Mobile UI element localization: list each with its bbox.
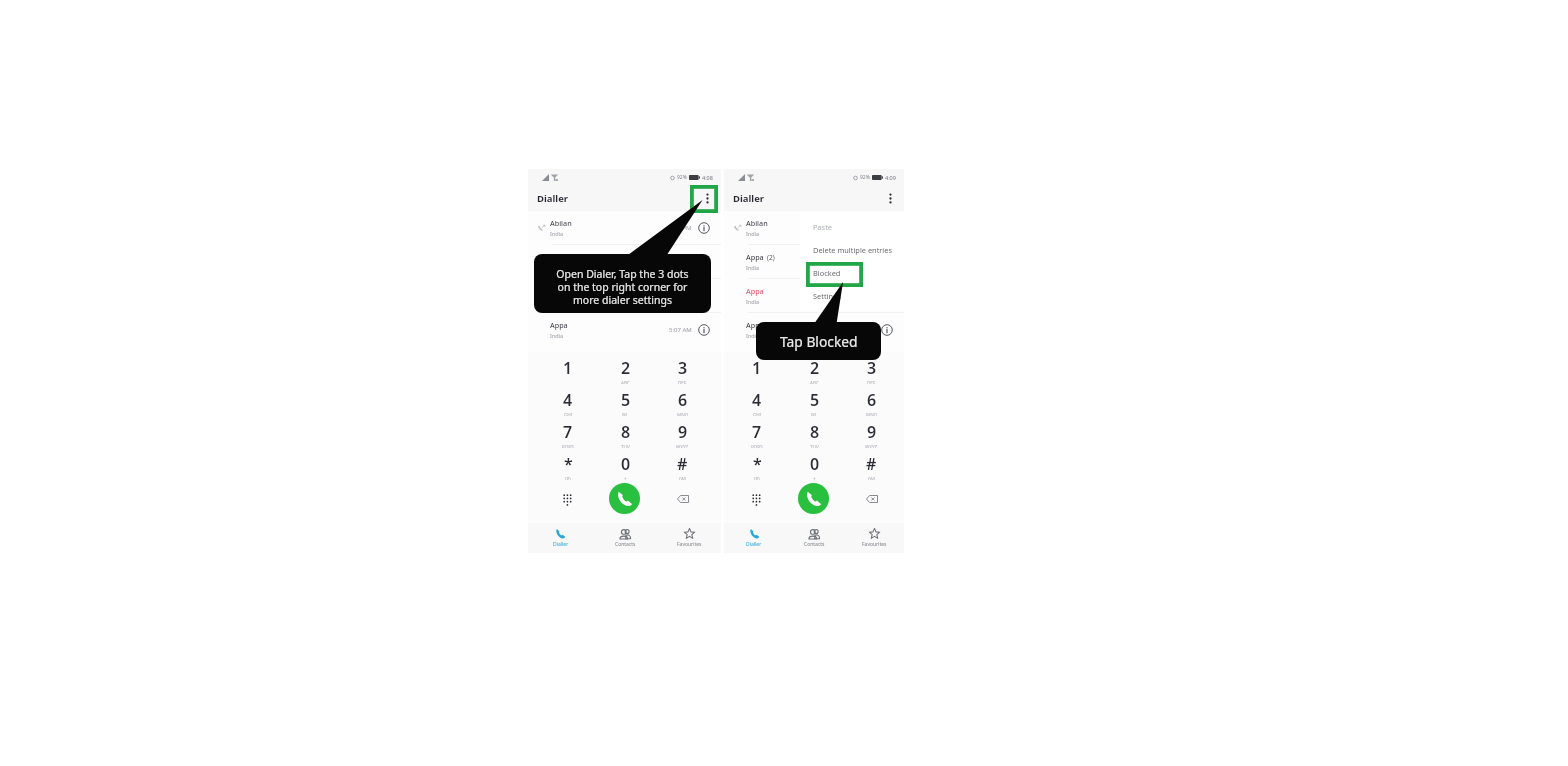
button[interactable]: Paste	[800, 215, 904, 238]
button[interactable]: Appa	[528, 313, 721, 346]
staticText: 6	[678, 389, 688, 411]
staticText: India	[746, 264, 760, 271]
button[interactable]: 2	[597, 352, 654, 384]
button[interactable]: Backspace	[672, 488, 694, 510]
staticText: 0	[810, 453, 820, 475]
staticText: TUV	[810, 444, 819, 448]
staticText: 4:09	[885, 174, 896, 181]
staticText: 5	[810, 389, 820, 411]
button[interactable]: Appa	[724, 313, 904, 346]
staticText: Contacts	[615, 541, 636, 548]
button[interactable]: 1	[728, 352, 786, 384]
button[interactable]: More options	[700, 191, 714, 205]
button[interactable]: Call details	[697, 255, 710, 268]
button[interactable]: Call	[798, 483, 829, 514]
staticText: Appa	[550, 286, 568, 296]
button[interactable]: Contacts	[784, 523, 844, 553]
staticText: Dialler	[553, 541, 569, 548]
button[interactable]: Call details	[697, 221, 710, 234]
button[interactable]: Abilan	[528, 211, 721, 244]
button[interactable]: Keypad	[557, 488, 579, 510]
button[interactable]: More options	[883, 191, 897, 205]
staticText: 4	[752, 389, 762, 411]
staticText: Appa	[746, 286, 764, 296]
staticText: +	[624, 476, 627, 480]
button[interactable]: Appa	[528, 245, 721, 278]
button[interactable]: Appa	[724, 245, 904, 278]
button[interactable]: 6	[654, 384, 711, 416]
staticText: 5	[621, 389, 631, 411]
button[interactable]: Call details	[697, 323, 710, 336]
button[interactable]: 0	[786, 448, 843, 480]
button[interactable]: Appa	[724, 279, 904, 312]
button[interactable]: 3	[843, 352, 900, 384]
button[interactable]: 9	[654, 416, 711, 448]
button[interactable]: 2	[786, 352, 843, 384]
button[interactable]: Dialler	[528, 523, 593, 553]
button[interactable]: 8	[597, 416, 654, 448]
staticText: India	[550, 264, 564, 271]
button[interactable]: 0	[597, 448, 654, 480]
button[interactable]: Favourites	[844, 523, 904, 553]
staticText: Appa	[746, 320, 764, 330]
button[interactable]: Call	[609, 483, 640, 514]
button[interactable]: 6	[843, 384, 900, 416]
button[interactable]: Appa	[528, 279, 721, 312]
button[interactable]: 4	[728, 384, 786, 416]
staticText: GHI	[564, 412, 573, 416]
button[interactable]: 9	[843, 416, 900, 448]
staticText: Delete multiple entries	[813, 245, 892, 255]
staticText: ABC	[810, 380, 819, 384]
button[interactable]: #	[654, 448, 711, 480]
staticText: (2)	[767, 253, 775, 262]
staticText: 6	[867, 389, 877, 411]
button[interactable]: #	[843, 448, 900, 480]
staticText: Paste	[813, 222, 832, 232]
staticText: 9	[867, 421, 877, 443]
button[interactable]: Call details	[880, 323, 893, 336]
button[interactable]: Keypad	[746, 488, 768, 510]
button[interactable]: Dialler	[724, 523, 784, 553]
button[interactable]: 1	[539, 352, 597, 384]
staticText: 5:07 AM	[669, 292, 692, 300]
staticText: Abilan	[746, 218, 768, 228]
button[interactable]: 5	[786, 384, 843, 416]
button[interactable]: *	[539, 448, 597, 480]
staticText: JKL	[811, 412, 818, 416]
staticText: 8	[810, 421, 820, 443]
staticText: (P)	[565, 476, 571, 480]
staticText: PQRS	[562, 444, 574, 448]
button[interactable]: 4	[539, 384, 597, 416]
button[interactable]: Blocked	[800, 261, 904, 284]
button[interactable]: 3	[654, 352, 711, 384]
staticText: 92%	[677, 174, 687, 181]
button[interactable]: Settings	[800, 284, 904, 307]
staticText: India	[550, 230, 564, 237]
staticText: 3	[678, 357, 688, 379]
button[interactable]: Favourites	[657, 523, 721, 553]
staticText: 1	[752, 357, 762, 379]
staticText: (W)	[868, 476, 876, 480]
button[interactable]: *	[728, 448, 786, 480]
button[interactable]: Contacts	[593, 523, 657, 553]
button[interactable]: 8	[786, 416, 843, 448]
button[interactable]: 5	[597, 384, 654, 416]
button[interactable]: 7	[539, 416, 597, 448]
staticText: PQRS	[751, 444, 763, 448]
button[interactable]: Backspace	[861, 488, 883, 510]
staticText: Settings	[813, 291, 842, 301]
staticText: Dialler	[537, 192, 569, 205]
button[interactable]: Abilan	[724, 211, 904, 244]
staticText: WXYZ	[676, 444, 689, 448]
staticText: 2	[621, 357, 631, 379]
button[interactable]: Delete multiple entries	[800, 238, 904, 261]
staticText: Favourites	[862, 541, 887, 548]
staticText: India	[746, 230, 760, 237]
button[interactable]: 7	[728, 416, 786, 448]
